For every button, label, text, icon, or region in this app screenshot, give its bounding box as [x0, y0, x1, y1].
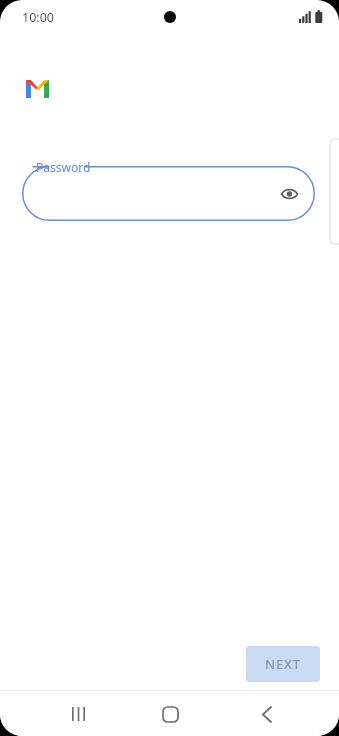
- staticText: Password: [36, 159, 91, 175]
- button[interactable]: Back: [244, 692, 288, 736]
- staticText: 10:00: [22, 9, 54, 26]
- button[interactable]: Home: [148, 692, 192, 736]
- other: Gmail: [26, 80, 49, 98]
- button[interactable]: NEXT: [246, 646, 320, 682]
- button[interactable]: Recent apps: [56, 692, 100, 736]
- button[interactable]: Password: [22, 166, 315, 221]
- staticText: NEXT: [265, 655, 301, 673]
- button[interactable]: Show password: [272, 177, 306, 211]
